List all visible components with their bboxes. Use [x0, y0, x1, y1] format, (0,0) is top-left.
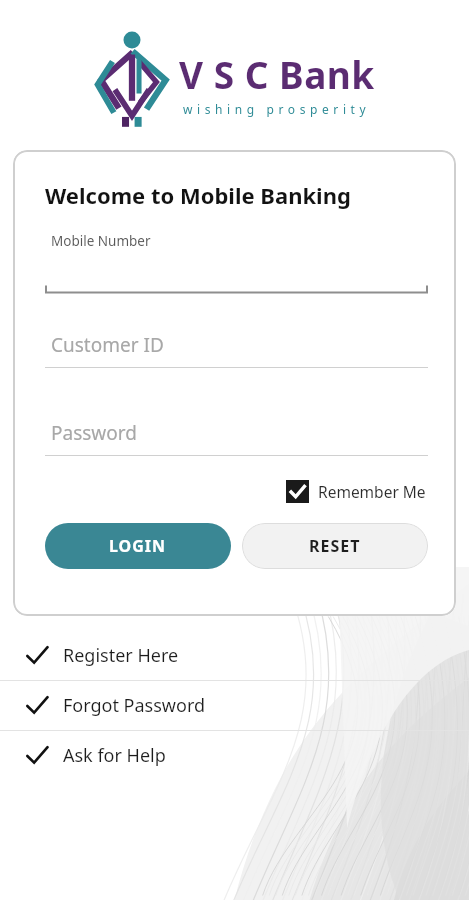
staticText: Customer ID — [51, 332, 164, 358]
staticText: Forgot Password — [63, 693, 206, 718]
staticText: Mobile Number — [51, 232, 151, 250]
staticText: RESET — [309, 535, 361, 557]
staticText: LOGIN — [109, 535, 167, 557]
button[interactable]: RESET — [242, 523, 428, 569]
staticText: Remember Me — [318, 481, 426, 502]
button[interactable]: Register Here — [0, 631, 469, 680]
staticText: Ask for Help — [63, 743, 166, 768]
button[interactable]: Forgot Password — [0, 681, 469, 730]
staticText: Welcome to Mobile Banking — [45, 180, 351, 210]
button[interactable]: Ask for Help — [0, 731, 469, 780]
button[interactable]: Remember Me — [284, 478, 428, 505]
button[interactable]: LOGIN — [45, 523, 231, 569]
staticText: Register Here — [63, 643, 179, 668]
staticText: wishing prosperity — [183, 101, 371, 117]
staticText: Password — [51, 420, 137, 446]
staticText: V S C Bank — [179, 49, 375, 99]
